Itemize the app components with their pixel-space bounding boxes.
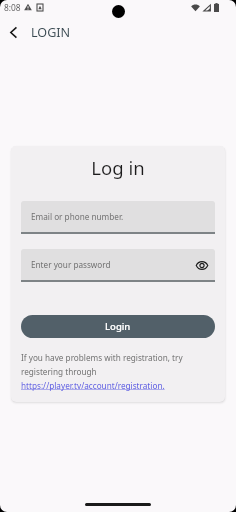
staticText: Enter your password — [31, 259, 111, 270]
staticText: LOGIN — [31, 24, 71, 41]
staticText: Login — [105, 320, 131, 333]
button[interactable]: https://player.tv/account/registration. — [21, 380, 165, 391]
button[interactable]: Back — [0, 19, 26, 45]
staticText: 8:08 — [4, 2, 21, 13]
staticText: Email or phone number. — [31, 211, 124, 222]
button[interactable]: Show password — [194, 257, 210, 273]
button[interactable]: Enter your password — [21, 249, 215, 280]
staticText: If you have problems with registration, … — [21, 352, 183, 363]
button[interactable]: Login — [21, 315, 215, 338]
staticText: registering through — [21, 366, 97, 377]
staticText: Log in — [11, 155, 225, 180]
button[interactable]: Email or phone number. — [21, 201, 215, 232]
